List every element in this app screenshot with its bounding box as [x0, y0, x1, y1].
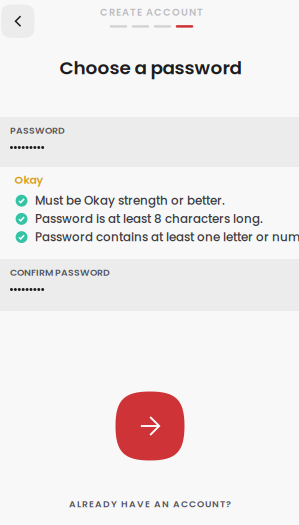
staticText: Choose a password — [59, 55, 241, 81]
staticText: Okay — [14, 172, 43, 187]
staticText: CONFIRM PASSWORD — [10, 266, 110, 279]
button[interactable]: Continue — [115, 391, 184, 460]
staticText: C R E A T E A C C O U N T — [100, 5, 203, 19]
staticText: Must be Okay strength or better. — [35, 192, 225, 209]
button[interactable]: A L R E A D Y H A V E A N A C C O U N T … — [53, 494, 247, 514]
staticText: A L R E A D Y H A V E A N A C C O U N T … — [69, 498, 231, 510]
staticText: PASSWORD — [10, 124, 65, 137]
button[interactable]: Back — [1, 4, 35, 38]
staticText: Password is at least 8 characters long. — [35, 211, 263, 227]
staticText: Password contains at least one letter or… — [35, 229, 299, 245]
